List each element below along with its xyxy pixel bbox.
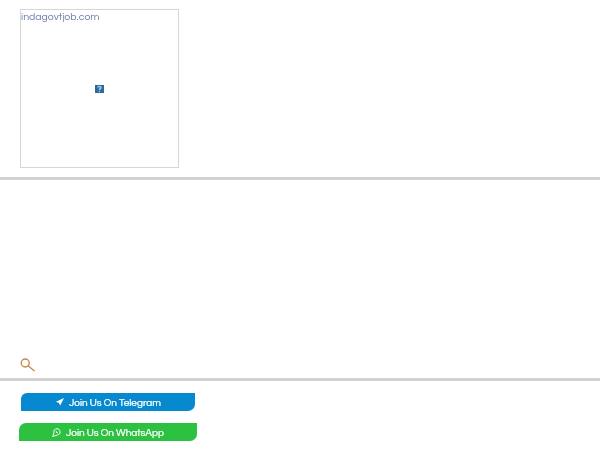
button[interactable]: Search [19,355,35,371]
button[interactable]: Join Us On Telegram [21,393,195,411]
button[interactable]: Join Us On WhatsApp [19,423,197,441]
staticText: indagovtjob.com [21,11,100,22]
staticText: Join Us On Telegram [69,398,161,408]
staticText: Join Us On WhatsApp [66,428,164,438]
